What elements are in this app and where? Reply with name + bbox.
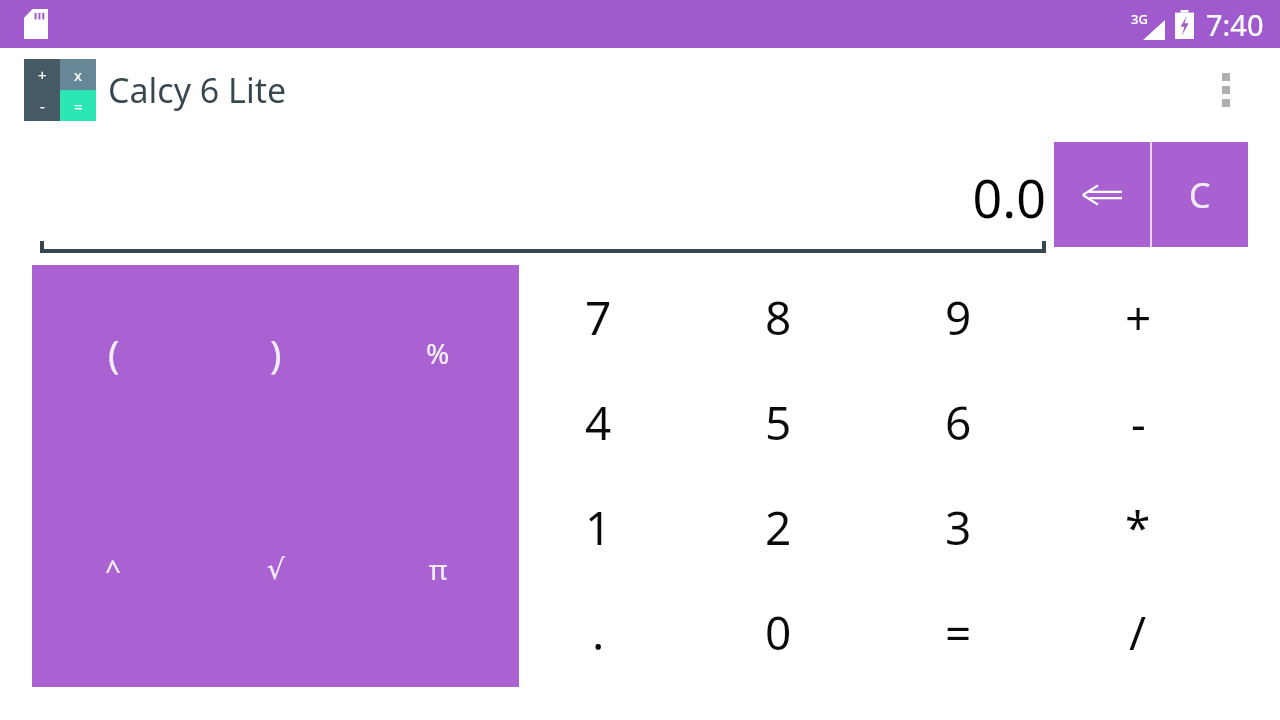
button[interactable]: . [508, 580, 688, 685]
staticText: 4 [585, 391, 612, 454]
staticText: 3G [1131, 10, 1148, 28]
staticText: 2 [765, 496, 792, 559]
button[interactable]: 2 [688, 475, 868, 580]
button[interactable]: - [1048, 370, 1228, 475]
staticText: √ [267, 553, 285, 586]
staticText: * [1125, 496, 1151, 559]
button[interactable]: 1 [508, 475, 688, 580]
staticText: + [38, 65, 47, 85]
staticText: - [1131, 391, 1146, 454]
button[interactable]: More options [1202, 66, 1250, 114]
staticText: ) [270, 327, 282, 379]
button[interactable]: 6 [868, 370, 1048, 475]
staticText: + [1125, 286, 1152, 349]
staticText: 9 [945, 286, 972, 349]
button[interactable]: 8 [688, 265, 868, 370]
staticText: 0.0 [972, 162, 1046, 233]
button[interactable]: + [1048, 265, 1228, 370]
button[interactable]: π [357, 537, 519, 601]
button[interactable]: = [868, 580, 1048, 685]
staticText: 7 [585, 286, 612, 349]
button[interactable]: * [1048, 475, 1228, 580]
button[interactable]: √ [195, 537, 357, 601]
staticText: 3 [945, 496, 972, 559]
button[interactable]: % [357, 321, 519, 385]
staticText: . [592, 601, 605, 664]
button[interactable]: 0 [688, 580, 868, 685]
staticText: 6 [945, 391, 972, 454]
button[interactable]: 3 [868, 475, 1048, 580]
staticText: 7:40 [1206, 5, 1264, 44]
button[interactable]: C [1152, 142, 1248, 247]
staticText: = [74, 96, 83, 116]
staticText: x [74, 65, 82, 85]
staticText: Calcy 6 Lite [108, 67, 287, 113]
button[interactable]: / [1048, 580, 1228, 685]
button[interactable]: ( [32, 321, 195, 385]
button[interactable]: 4 [508, 370, 688, 475]
staticText: = [945, 601, 972, 664]
button[interactable]: 0.0 [40, 158, 1046, 253]
button[interactable]: Backspace [1054, 142, 1150, 247]
staticText: 8 [765, 286, 792, 349]
staticText: π [429, 550, 448, 588]
staticText: - [40, 96, 45, 116]
staticText: % [426, 334, 450, 372]
staticText: 1 [585, 496, 612, 559]
staticText: ^ [105, 550, 122, 588]
staticText: / [1129, 601, 1147, 664]
staticText: ( [108, 327, 120, 379]
button[interactable]: ) [195, 321, 357, 385]
staticText: 0 [765, 601, 792, 664]
button[interactable]: 5 [688, 370, 868, 475]
button[interactable]: 7 [508, 265, 688, 370]
button[interactable]: ^ [32, 537, 195, 601]
button[interactable]: 9 [868, 265, 1048, 370]
staticText: C [1189, 172, 1211, 218]
staticText: 5 [765, 391, 792, 454]
